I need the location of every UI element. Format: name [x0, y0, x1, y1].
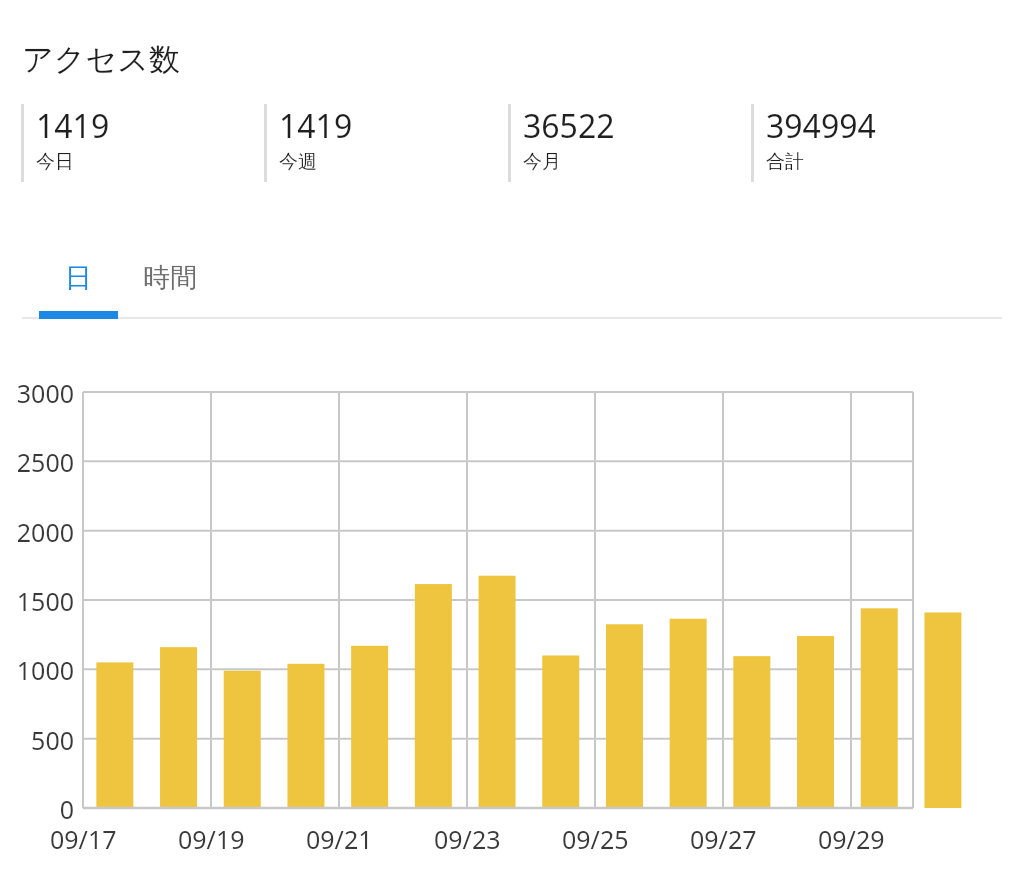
staticText: 1000 — [16, 653, 74, 687]
staticText: 0 — [59, 792, 74, 826]
staticText: 3000 — [16, 376, 74, 410]
button[interactable]: 1419 — [264, 104, 353, 182]
staticText: 2500 — [16, 445, 74, 479]
staticText: 09/27 — [690, 822, 757, 856]
staticText: 09/21 — [306, 822, 373, 856]
staticText: 合計 — [766, 150, 804, 174]
staticText: 09/25 — [562, 822, 629, 856]
staticText: 時間 — [143, 261, 197, 295]
staticText: 394994 — [766, 104, 876, 148]
button[interactable]: 時間 — [118, 252, 222, 320]
staticText: 36522 — [523, 104, 615, 148]
staticText: 09/17 — [50, 822, 117, 856]
staticText: 2000 — [16, 515, 74, 549]
button[interactable]: 日 — [39, 252, 118, 320]
button[interactable]: 394994 — [751, 104, 876, 182]
button[interactable]: 36522 — [508, 104, 615, 182]
staticText: 1419 — [279, 104, 353, 148]
staticText: 今日 — [36, 150, 74, 174]
staticText: 1500 — [16, 584, 74, 618]
staticText: 500 — [31, 723, 74, 757]
staticText: 09/19 — [178, 822, 245, 856]
staticText: アクセス数 — [22, 40, 180, 79]
staticText: 日 — [65, 261, 92, 295]
staticText: 09/23 — [434, 822, 501, 856]
staticText: 1419 — [36, 104, 110, 148]
staticText: 今月 — [523, 150, 561, 174]
staticText: 09/29 — [818, 822, 885, 856]
button[interactable]: 1419 — [21, 104, 110, 182]
staticText: 今週 — [279, 150, 317, 174]
